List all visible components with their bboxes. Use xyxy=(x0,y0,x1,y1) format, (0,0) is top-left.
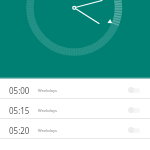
staticText: 05:00 xyxy=(9,85,30,96)
staticText: Weekdays xyxy=(38,128,57,133)
button[interactable]: Toggle alarm xyxy=(128,86,140,94)
staticText: Weekdays xyxy=(38,88,57,93)
staticText: 05:20 xyxy=(9,125,30,136)
staticText: 05:15 xyxy=(9,105,30,116)
staticText: Weekdays xyxy=(38,108,57,113)
button[interactable]: 05:20 xyxy=(0,119,150,138)
button[interactable]: Toggle alarm xyxy=(128,126,140,134)
button[interactable]: 05:15 xyxy=(0,99,150,118)
button[interactable]: 05:00 xyxy=(0,79,150,98)
button[interactable]: Toggle alarm xyxy=(128,106,140,114)
